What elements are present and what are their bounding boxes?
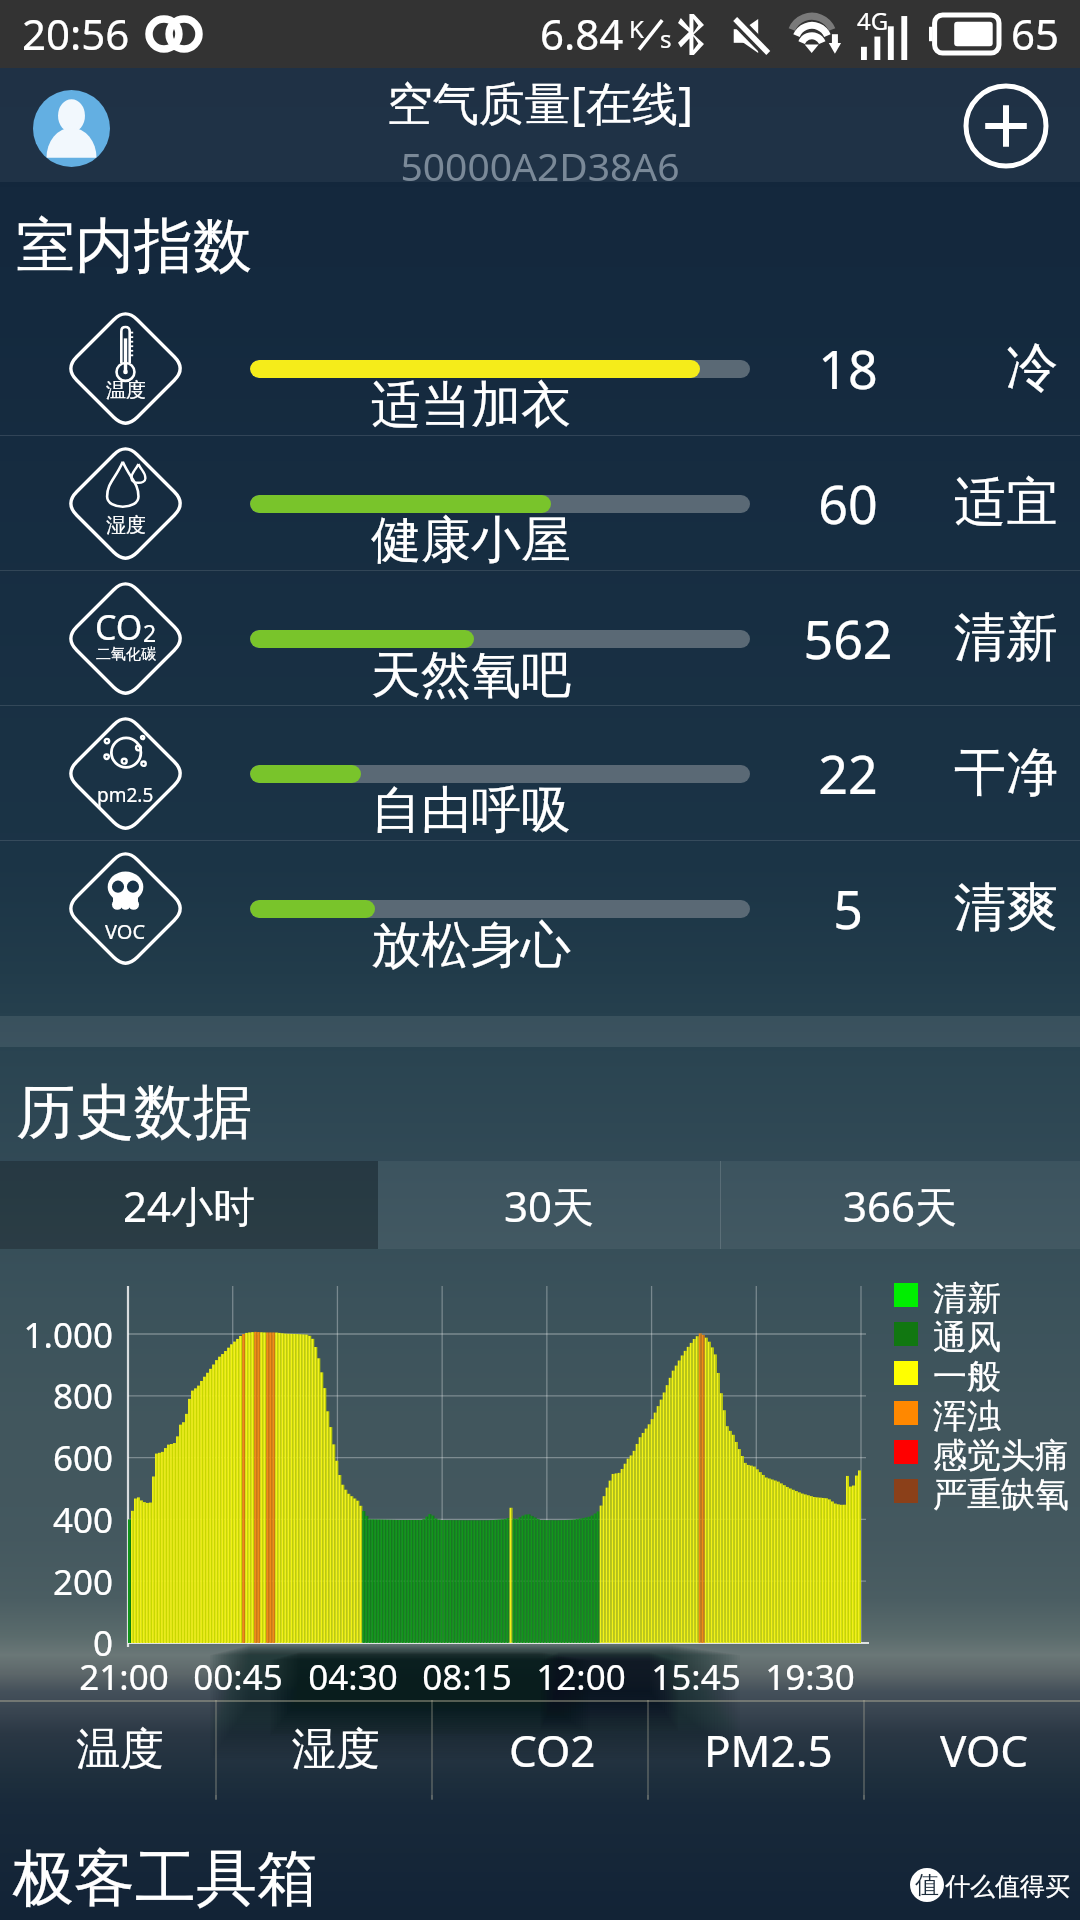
staticText: 20:56 bbox=[22, 5, 130, 62]
staticText: 什么值得买 bbox=[820, 1871, 1070, 1902]
staticText: CO2 bbox=[509, 1720, 596, 1780]
staticText: 19:30 bbox=[740, 1653, 880, 1701]
staticText: VOC bbox=[105, 918, 146, 945]
staticText: 30天 bbox=[504, 1177, 595, 1234]
staticText: 放松身心 bbox=[251, 914, 691, 977]
staticText: 800 bbox=[0, 1372, 113, 1420]
staticText: 清新 bbox=[836, 605, 1058, 671]
staticText: 室内指数 bbox=[16, 209, 252, 283]
button[interactable]: 湿度 bbox=[0, 436, 1080, 570]
staticText: 湿度 bbox=[292, 1722, 380, 1777]
staticText: 21:00 bbox=[54, 1653, 194, 1701]
staticText: s bbox=[660, 22, 672, 55]
button[interactable]: VOC bbox=[864, 1700, 1080, 1795]
staticText: K bbox=[629, 12, 644, 45]
staticText: CO bbox=[95, 604, 143, 650]
staticText: 00:45 bbox=[168, 1653, 308, 1701]
staticText: 200 bbox=[0, 1558, 113, 1606]
staticText: 适当加衣 bbox=[251, 374, 691, 437]
button[interactable]: VOC bbox=[0, 841, 1080, 975]
button[interactable]: Profile bbox=[33, 90, 110, 167]
staticText: 湿度 bbox=[106, 513, 146, 538]
staticText: 极客工具箱 bbox=[13, 1840, 318, 1917]
staticText: 健康小屋 bbox=[251, 509, 691, 572]
staticText: 自由呼吸 bbox=[251, 779, 691, 842]
staticText: 温度 bbox=[76, 1722, 164, 1777]
button[interactable]: Add device bbox=[961, 81, 1051, 171]
staticText: 22 bbox=[760, 738, 936, 809]
staticText: 清爽 bbox=[836, 875, 1058, 941]
button[interactable]: 24小时 bbox=[0, 1161, 378, 1249]
staticText: VOC bbox=[940, 1720, 1029, 1780]
staticText: 4G bbox=[857, 4, 889, 37]
staticText: 04:30 bbox=[283, 1653, 423, 1701]
button[interactable]: 湿度 bbox=[216, 1700, 432, 1795]
staticText: PM2.5 bbox=[704, 1720, 833, 1780]
staticText: 感觉头痛 bbox=[933, 1434, 1069, 1477]
staticText: 18 bbox=[760, 333, 936, 404]
staticText: 24小时 bbox=[123, 1177, 256, 1234]
staticText: 历史数据 bbox=[16, 1075, 252, 1149]
staticText: 366天 bbox=[843, 1177, 958, 1234]
staticText: 0 bbox=[0, 1619, 113, 1667]
staticText: 适宜 bbox=[836, 470, 1058, 536]
staticText: 天然氧吧 bbox=[251, 644, 691, 707]
staticText: 干净 bbox=[836, 740, 1058, 806]
staticText: 400 bbox=[0, 1496, 113, 1544]
button[interactable]: CO bbox=[0, 571, 1080, 705]
staticText: 5 bbox=[760, 873, 936, 944]
staticText: 二氧化碳 bbox=[96, 645, 156, 664]
staticText: 冷 bbox=[836, 335, 1058, 401]
staticText: 1.000 bbox=[0, 1311, 113, 1359]
staticText: 一般 bbox=[933, 1355, 1001, 1398]
button[interactable]: 温度 bbox=[0, 1700, 216, 1795]
staticText: 2 bbox=[143, 617, 157, 648]
staticText: 12:00 bbox=[511, 1653, 651, 1701]
button[interactable]: 温度 bbox=[0, 301, 1080, 435]
staticText: 60 bbox=[760, 468, 936, 539]
staticText: 通风 bbox=[933, 1316, 1001, 1359]
button[interactable]: CO2 bbox=[432, 1700, 648, 1795]
staticText: 08:15 bbox=[397, 1653, 537, 1701]
staticText: 浑浊 bbox=[933, 1395, 1001, 1438]
staticText: 65 bbox=[1011, 5, 1060, 62]
button[interactable]: 366天 bbox=[721, 1161, 1080, 1249]
staticText: 温度 bbox=[106, 378, 146, 403]
staticText: 50000A2D38A6 bbox=[190, 139, 890, 192]
staticText: 清新 bbox=[933, 1277, 1001, 1320]
staticText: 空气质量[在线] bbox=[190, 71, 890, 134]
staticText: pm2.5 bbox=[97, 782, 154, 808]
staticText: 562 bbox=[760, 603, 936, 674]
staticText: 6.84 bbox=[540, 5, 624, 62]
staticText: 600 bbox=[0, 1434, 113, 1482]
staticText: 值 bbox=[915, 1870, 939, 1900]
staticText: 15:45 bbox=[626, 1653, 766, 1701]
button[interactable]: pm2.5 bbox=[0, 706, 1080, 840]
staticText: 严重缺氧 bbox=[933, 1473, 1069, 1516]
button[interactable]: 30天 bbox=[378, 1161, 720, 1249]
button[interactable]: PM2.5 bbox=[648, 1700, 864, 1795]
